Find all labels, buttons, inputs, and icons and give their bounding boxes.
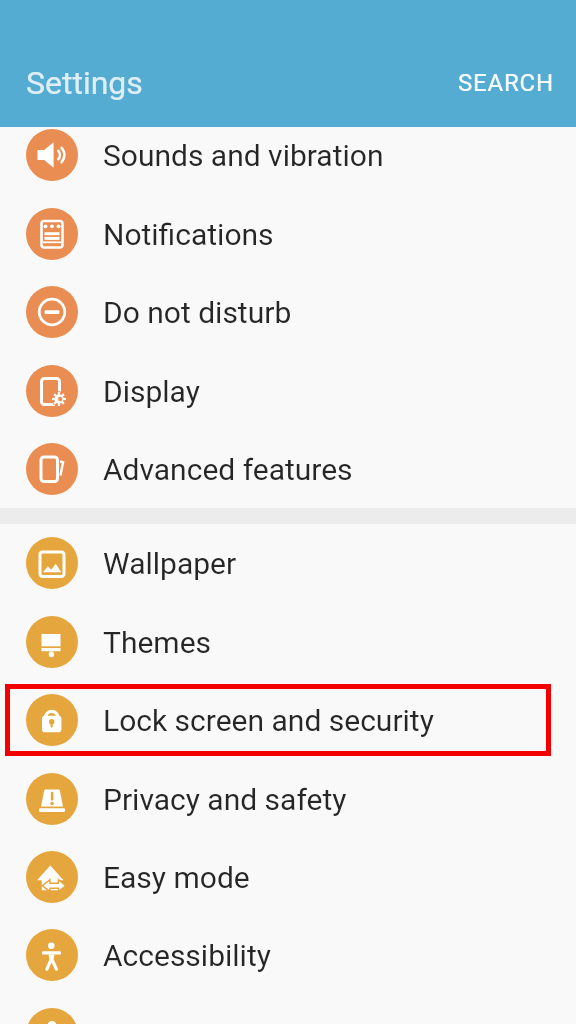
button[interactable]: Themes — [0, 603, 576, 681]
staticText: Settings — [26, 64, 143, 102]
button[interactable]: Accessibility — [0, 916, 576, 994]
staticText: Easy mode — [103, 860, 250, 895]
button[interactable]: Wallpaper — [0, 524, 576, 602]
button[interactable]: Advanced features — [0, 430, 576, 508]
staticText: Advanced features — [103, 452, 353, 487]
button[interactable]: Display — [0, 352, 576, 430]
staticText: Wallpaper — [103, 546, 237, 581]
staticText: Sounds and vibration — [103, 138, 384, 173]
button[interactable]: Privacy and safety — [0, 760, 576, 838]
button[interactable]: Accounts — [0, 995, 576, 1024]
staticText: Accessibility — [103, 938, 271, 973]
button[interactable]: Easy mode — [0, 838, 576, 916]
staticText: Display — [103, 374, 200, 409]
button[interactable]: Sounds and vibration — [0, 116, 576, 194]
staticText: Themes — [103, 625, 212, 660]
staticText: Privacy and safety — [103, 782, 347, 817]
button[interactable]: SEARCH — [456, 59, 556, 107]
staticText: Lock screen and security — [103, 703, 434, 738]
button[interactable]: Lock screen and security — [0, 681, 576, 759]
staticText: SEARCH — [458, 69, 554, 97]
staticText: Notifications — [103, 217, 274, 252]
button[interactable]: Notifications — [0, 195, 576, 273]
staticText: Do not disturb — [103, 295, 292, 330]
button[interactable]: Do not disturb — [0, 273, 576, 351]
